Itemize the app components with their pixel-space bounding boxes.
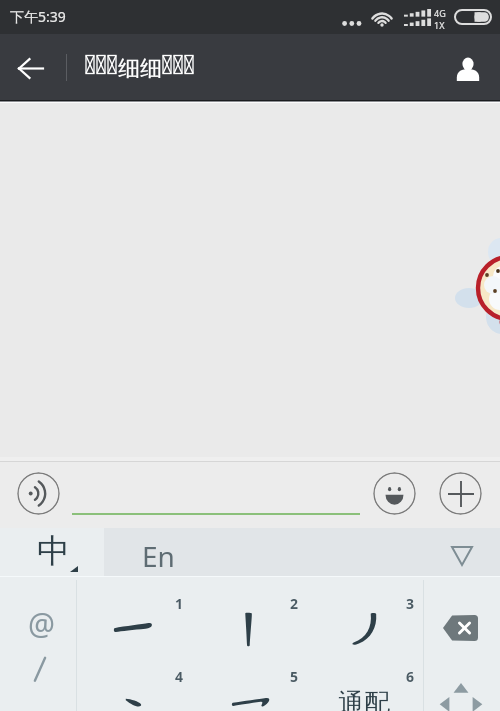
staticText: 5 [290,667,299,686]
staticText: 3 [406,594,415,613]
staticText: En [142,537,175,575]
staticText: 1 [175,594,184,613]
staticText: 通配 [338,687,390,711]
button[interactable]: Cursor arrows [424,653,500,711]
button[interactable]: Emoji [373,472,416,515]
button[interactable]: Back [6,44,54,92]
staticText: 4 [175,667,184,686]
button[interactable]: 6 [308,653,423,711]
button[interactable] [0,653,76,711]
staticText: 6 [406,667,415,686]
button[interactable]: Contact profile [444,44,492,92]
button[interactable]: 2 [192,580,307,653]
button[interactable]: Backspace [424,580,500,653]
staticText: 下午5:39 [10,7,66,26]
staticText: 细细 [118,55,162,83]
button[interactable]: 1 [77,580,192,653]
button[interactable]: @ [0,580,76,653]
button[interactable]: 5 [192,653,307,711]
button[interactable]: 3 [308,580,423,653]
button[interactable]: 4 [77,653,192,711]
button[interactable]: More options [439,472,482,515]
button[interactable]: 中 [0,528,104,577]
staticText: 中 [37,530,70,572]
staticText: 1X [434,19,445,31]
staticText: @ [28,603,55,644]
button[interactable]: Voice message [17,472,60,515]
staticText: 4G [434,7,446,19]
button[interactable]: En [104,528,500,576]
staticText: 2 [290,594,299,613]
